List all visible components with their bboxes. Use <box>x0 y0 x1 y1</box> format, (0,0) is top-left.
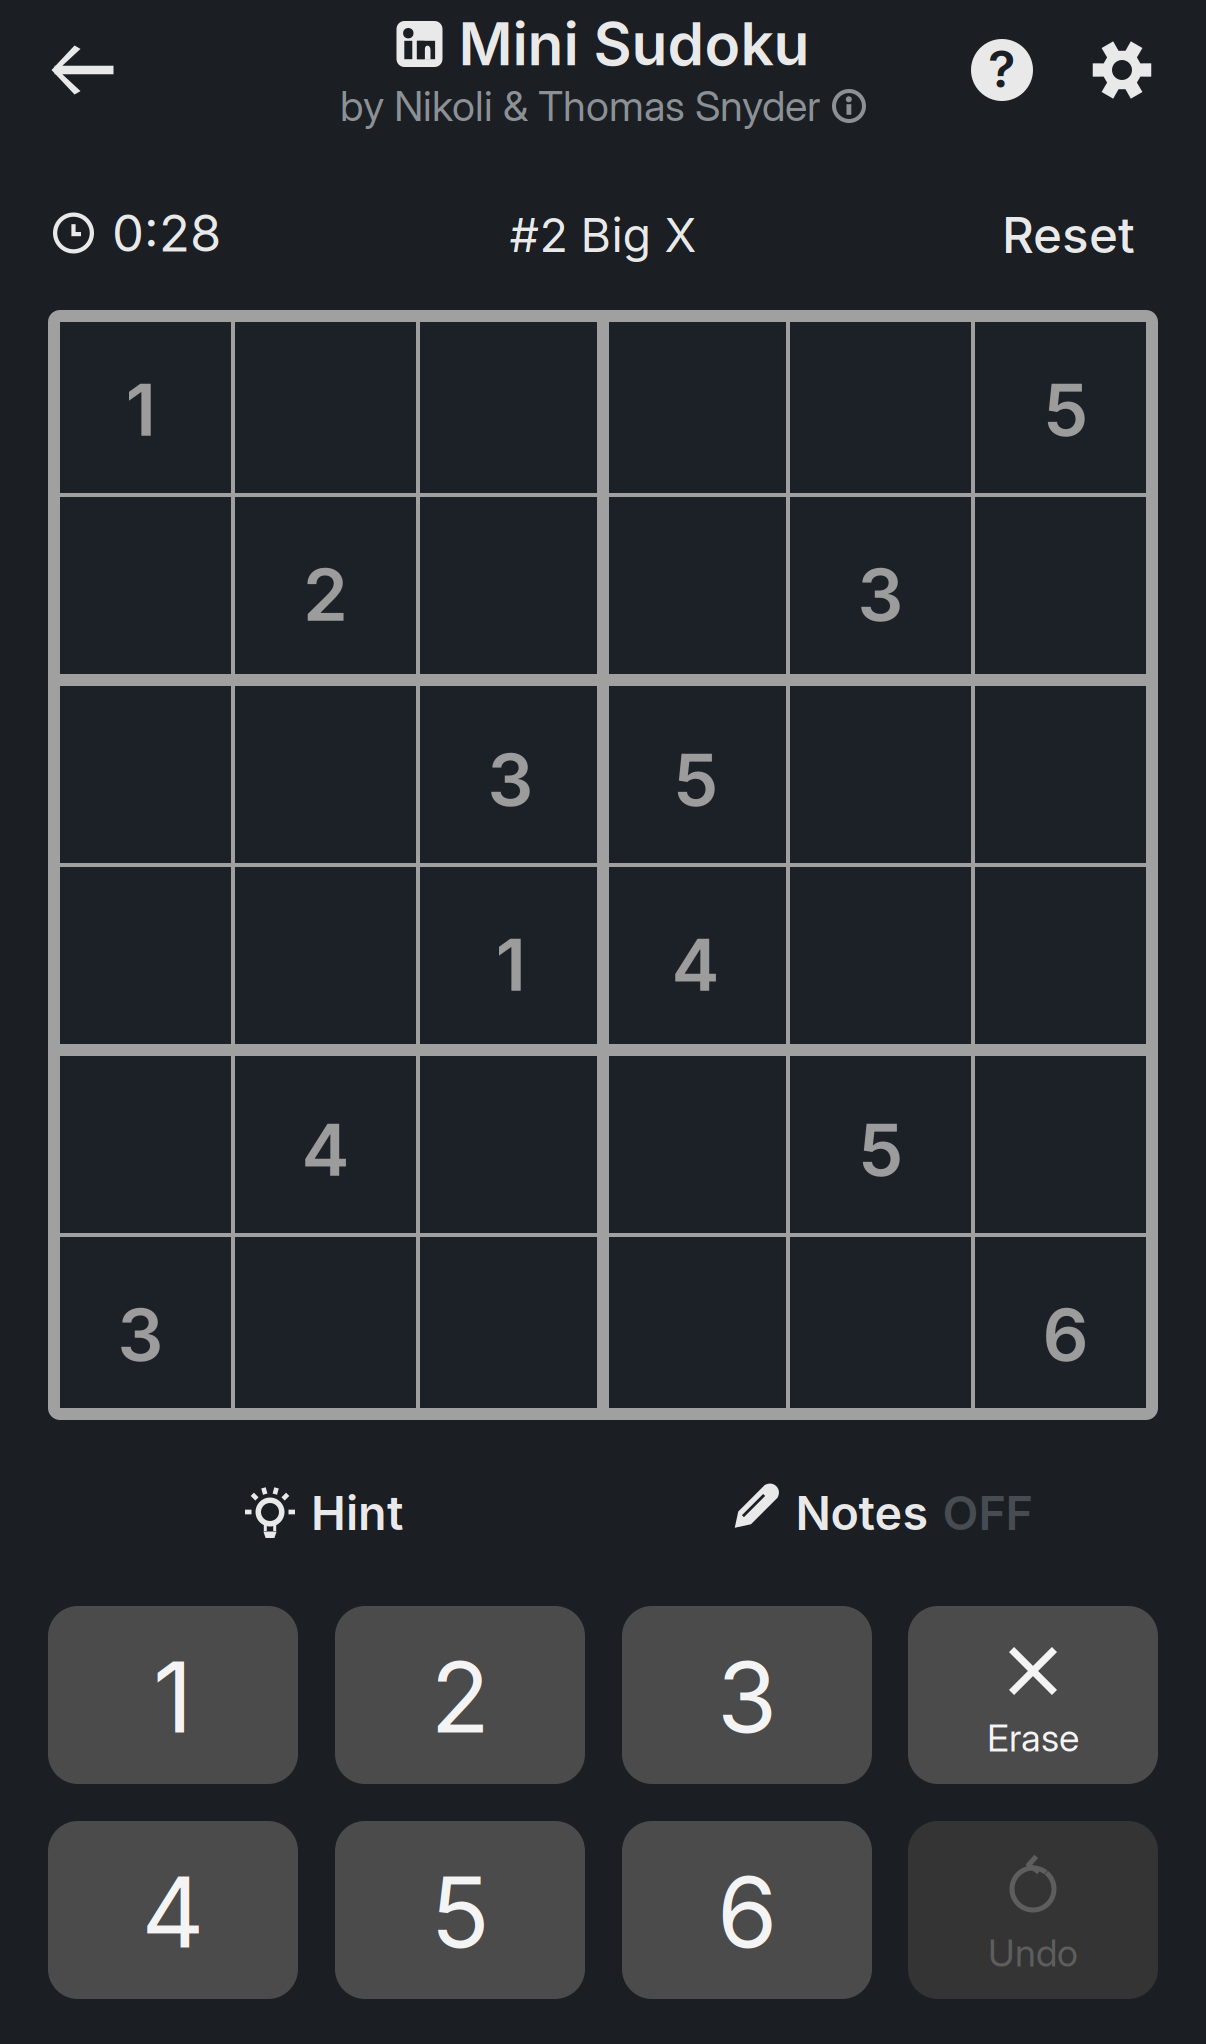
staticText: 2 <box>430 1638 489 1756</box>
button[interactable]: Cell row 1 column 1, 1 <box>48 310 233 495</box>
button[interactable]: Undo <box>908 1821 1158 1999</box>
button[interactable]: Cell row 6 column 6, 6 <box>973 1235 1158 1420</box>
staticText: Reset <box>1002 205 1135 265</box>
button[interactable]: Cell row 4 column 3, 1 <box>418 865 603 1050</box>
button[interactable]: 2 <box>335 1606 585 1784</box>
staticText: Notes <box>795 1485 928 1541</box>
staticText: 2 <box>303 551 348 638</box>
staticText: 3 <box>117 1291 163 1378</box>
staticText: Hint <box>311 1485 403 1541</box>
staticText: 0:28 <box>112 202 221 264</box>
button[interactable]: Empty cell row 2 column 4 <box>603 495 788 680</box>
button[interactable]: Empty cell row 6 column 5 <box>788 1235 973 1420</box>
button[interactable]: 4 <box>48 1821 298 1999</box>
button[interactable]: 3 <box>622 1606 872 1784</box>
button[interactable]: Empty cell row 5 column 4 <box>603 1050 788 1235</box>
button[interactable]: Empty cell row 1 column 4 <box>603 310 788 495</box>
button[interactable]: Empty cell row 1 column 2 <box>233 310 418 495</box>
staticText: Undo <box>988 1930 1078 1976</box>
button[interactable]: Cell row 5 column 5, 5 <box>788 1050 973 1235</box>
button[interactable]: Empty cell row 3 column 6 <box>973 680 1158 865</box>
staticText: 3 <box>857 551 903 638</box>
button[interactable]: Cell row 3 column 4, 5 <box>603 680 788 865</box>
button[interactable]: 1 <box>48 1606 298 1784</box>
button[interactable]: Cell row 2 column 5, 3 <box>788 495 973 680</box>
staticText: 5 <box>673 736 718 823</box>
button[interactable]: Reset <box>875 190 1135 280</box>
button[interactable]: Empty cell row 3 column 2 <box>233 680 418 865</box>
button[interactable]: Empty cell row 2 column 6 <box>973 495 1158 680</box>
button[interactable]: Help <box>940 18 1064 122</box>
staticText: 1 <box>495 921 525 1008</box>
button[interactable]: Empty cell row 1 column 5 <box>788 310 973 495</box>
button[interactable]: Hint <box>202 1468 442 1558</box>
staticText: 4 <box>671 921 719 1008</box>
button[interactable]: Cell row 1 column 6, 5 <box>973 310 1158 495</box>
staticText: 6 <box>717 1853 777 1971</box>
button[interactable]: Empty cell row 2 column 3 <box>418 495 603 680</box>
staticText: OFF <box>942 1485 1032 1541</box>
button[interactable]: Empty cell row 5 column 1 <box>48 1050 233 1235</box>
button[interactable]: Empty cell row 5 column 6 <box>973 1050 1158 1235</box>
button[interactable]: Empty cell row 4 column 2 <box>233 865 418 1050</box>
button[interactable]: Back <box>20 18 144 122</box>
button[interactable]: Empty cell row 2 column 1 <box>48 495 233 680</box>
button[interactable]: Cell row 2 column 2, 2 <box>233 495 418 680</box>
button[interactable]: Empty cell row 4 column 6 <box>973 865 1158 1050</box>
staticText: by Nikoli & Thomas Snyder <box>340 81 820 131</box>
button[interactable]: Cell row 4 column 4, 4 <box>603 865 788 1050</box>
staticText: 3 <box>717 1638 777 1756</box>
staticText: 5 <box>858 1106 903 1193</box>
staticText: 4 <box>141 1853 204 1971</box>
staticText: 3 <box>487 736 533 823</box>
staticText: 5 <box>430 1853 489 1971</box>
button[interactable]: Empty cell row 6 column 3 <box>418 1235 603 1420</box>
staticText: #2 Big X <box>509 207 696 263</box>
button[interactable]: Empty cell row 3 column 5 <box>788 680 973 865</box>
button[interactable]: Cell row 3 column 3, 3 <box>418 680 603 865</box>
staticText: Erase <box>987 1715 1079 1761</box>
button[interactable]: 5 <box>335 1821 585 1999</box>
button[interactable]: Empty cell row 3 column 1 <box>48 680 233 865</box>
staticText: 5 <box>1043 366 1088 453</box>
staticText: 1 <box>153 1638 193 1756</box>
button[interactable]: Empty cell row 4 column 1 <box>48 865 233 1050</box>
button[interactable]: Notes <box>693 1468 1063 1558</box>
button[interactable]: Empty cell row 4 column 5 <box>788 865 973 1050</box>
staticText: Mini Sudoku <box>458 8 809 79</box>
staticText: 6 <box>1042 1291 1088 1378</box>
button[interactable]: Cell row 6 column 1, 3 <box>48 1235 233 1420</box>
button[interactable]: Cell row 5 column 2, 4 <box>233 1050 418 1235</box>
button[interactable]: Empty cell row 5 column 3 <box>418 1050 603 1235</box>
button[interactable]: Erase <box>908 1606 1158 1784</box>
button[interactable]: Empty cell row 6 column 4 <box>603 1235 788 1420</box>
button[interactable]: Settings <box>1060 16 1184 124</box>
button[interactable]: 6 <box>622 1821 872 1999</box>
staticText: ? <box>988 38 1016 100</box>
staticText: 4 <box>301 1106 349 1193</box>
button[interactable]: Empty cell row 1 column 3 <box>418 310 603 495</box>
button[interactable]: Empty cell row 6 column 2 <box>233 1235 418 1420</box>
staticText: 1 <box>125 366 155 453</box>
